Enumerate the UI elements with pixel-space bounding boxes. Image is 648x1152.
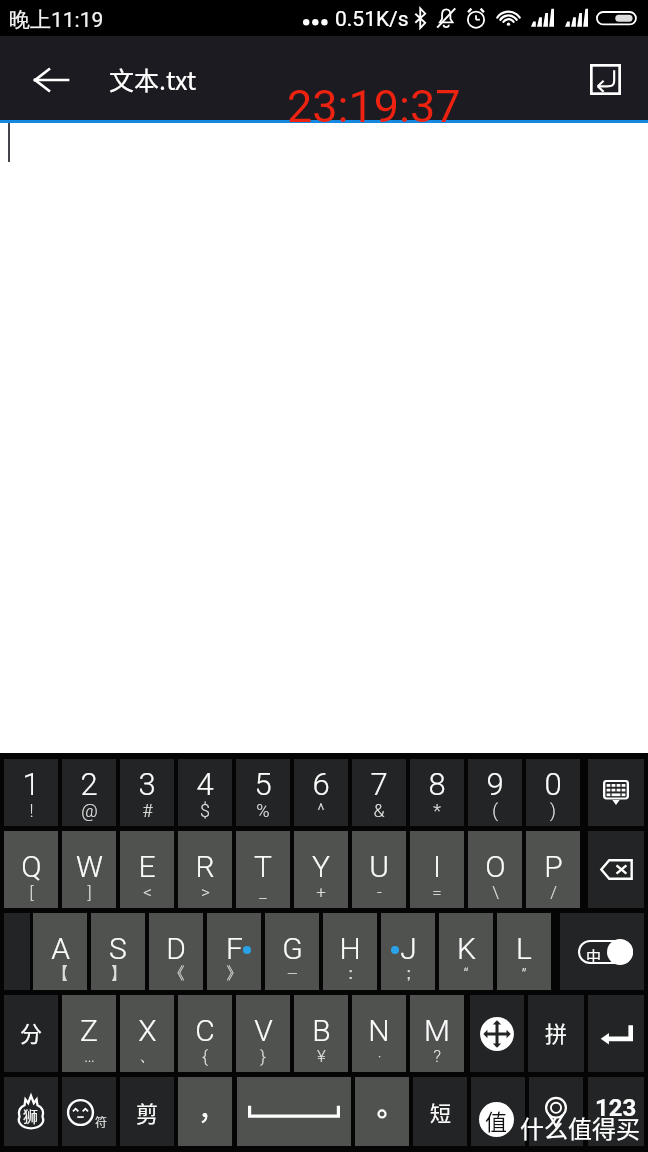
button[interactable]: X (120, 995, 174, 1072)
button[interactable]: Space (237, 1077, 351, 1146)
staticText: 4 (196, 766, 214, 802)
staticText: 文本.txt (109, 61, 197, 97)
staticText: 【 (52, 963, 69, 984)
staticText: < (143, 882, 152, 902)
button[interactable] (355, 1077, 409, 1146)
staticText: Y (312, 849, 330, 884)
button[interactable]: T (236, 831, 290, 908)
staticText: _ (259, 882, 267, 902)
button[interactable]: 短 (413, 1077, 467, 1146)
button[interactable]: 8 (410, 759, 464, 826)
button[interactable]: 4 (178, 759, 232, 826)
button[interactable]: G (265, 913, 319, 990)
staticText: 《 (168, 963, 185, 984)
staticText: Z (80, 1013, 98, 1048)
staticText: ； (400, 963, 417, 984)
button[interactable]: F (207, 913, 261, 990)
button[interactable]: M (410, 995, 464, 1072)
button[interactable]: ， (178, 1077, 232, 1146)
staticText: 符 (95, 1113, 108, 1130)
button[interactable]: W (62, 831, 116, 908)
staticText: 拼 (545, 1016, 568, 1048)
staticText: P (544, 849, 563, 884)
staticText: … (84, 1046, 95, 1066)
staticText: 3 (138, 766, 156, 802)
button[interactable]: Location (529, 1077, 583, 1146)
staticText: T (254, 849, 272, 884)
staticText: D (166, 931, 186, 966)
staticText: 2 (80, 766, 98, 802)
staticText: 分 (20, 1016, 43, 1048)
button[interactable]: Backspace (588, 831, 644, 908)
staticText: * (433, 800, 441, 821)
staticText: + (316, 882, 326, 902)
staticText: % (256, 800, 270, 821)
staticText: F (226, 931, 243, 966)
staticText: R (195, 849, 215, 884)
staticText: W (76, 849, 103, 884)
button[interactable]: Enter (579, 53, 631, 105)
button[interactable]: Move cursor (470, 995, 524, 1072)
button[interactable]: 123 (588, 1077, 644, 1146)
button[interactable]: J (381, 913, 435, 990)
staticText: 5 (254, 766, 272, 802)
button[interactable]: 3 (120, 759, 174, 826)
staticText: & (373, 800, 385, 821)
button[interactable]: Q (4, 831, 58, 908)
button[interactable]: L (497, 913, 551, 990)
button[interactable]: 2 (62, 759, 116, 826)
button[interactable]: N (352, 995, 406, 1072)
button[interactable]: Emoji (62, 1077, 116, 1146)
button[interactable]: K (439, 913, 493, 990)
button[interactable]: 1 (4, 759, 58, 826)
button[interactable]: E (120, 831, 174, 908)
button[interactable]: O (468, 831, 522, 908)
staticText: $ (200, 800, 210, 821)
staticText: # (142, 800, 153, 821)
staticText: 1 (22, 766, 40, 802)
button[interactable]: 5 (236, 759, 290, 826)
button[interactable]: R (178, 831, 232, 908)
button[interactable]: Z (62, 995, 116, 1072)
staticText: N (368, 1013, 390, 1048)
staticText: — (287, 966, 298, 982)
button[interactable]: Chinese English toggle (560, 913, 644, 990)
staticText: ) (550, 800, 556, 821)
button[interactable]: Settings (471, 1077, 525, 1146)
button[interactable]: 剪 (120, 1077, 174, 1146)
staticText: 中 (586, 945, 602, 967)
button[interactable]: Enter (588, 995, 644, 1072)
button[interactable]: 拼 (528, 995, 584, 1072)
button[interactable]: P (526, 831, 580, 908)
staticText: V (254, 1013, 273, 1048)
staticText: H (339, 931, 361, 966)
staticText: G (282, 931, 303, 966)
staticText: 0 (544, 766, 562, 802)
button[interactable]: A (33, 913, 87, 990)
button[interactable]: D (149, 913, 203, 990)
staticText: K (457, 931, 476, 966)
button[interactable]: Hide keyboard (588, 759, 644, 826)
button[interactable]: 6 (294, 759, 348, 826)
staticText: Q (21, 849, 42, 884)
button[interactable]: Sticker pack (4, 1077, 58, 1146)
button[interactable]: 分 (4, 995, 58, 1072)
button[interactable]: U (352, 831, 406, 908)
staticText: @ (81, 800, 98, 821)
button[interactable]: I (410, 831, 464, 908)
staticText: { (202, 1046, 208, 1066)
button[interactable]: C (178, 995, 232, 1072)
button[interactable]: H (323, 913, 377, 990)
staticText: 晚上11:19 (9, 7, 104, 33)
button[interactable]: 7 (352, 759, 406, 826)
staticText: U (369, 849, 389, 884)
button[interactable]: Back (14, 51, 88, 109)
button[interactable]: 0 (526, 759, 580, 826)
button[interactable]: Y (294, 831, 348, 908)
staticText: 短 (430, 1097, 451, 1127)
button[interactable]: S (91, 913, 145, 990)
button[interactable]: V (236, 995, 290, 1072)
button[interactable]: 9 (468, 759, 522, 826)
button[interactable]: B (294, 995, 348, 1072)
